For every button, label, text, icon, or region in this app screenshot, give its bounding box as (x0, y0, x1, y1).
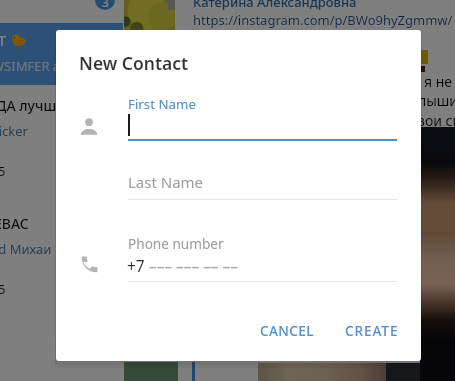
staticText: Last Name (128, 172, 204, 192)
staticText: CREATE (345, 321, 399, 340)
staticText: WSIMFER a (0, 57, 61, 75)
staticText: 5 (0, 162, 6, 180)
other: Contact name (80, 117, 98, 135)
staticText: ДА лучши (0, 96, 66, 115)
staticText: ЕВАС (0, 214, 29, 233)
staticText: вои си (417, 111, 455, 130)
staticText: Катерина Александровна (193, 0, 357, 11)
staticText: лыши (418, 91, 455, 110)
staticText: +7 (127, 256, 145, 277)
staticText: ––– ––– –– –– (145, 256, 238, 277)
staticText: New Contact (79, 51, 189, 75)
staticText: 3 (102, 0, 109, 10)
other: Phone number (77, 252, 100, 275)
staticText: T 🐤 (0, 31, 27, 50)
staticText: First Name (128, 95, 196, 113)
staticText: Phone number (128, 234, 224, 253)
button[interactable]: CANCEL (252, 314, 322, 347)
staticText: ticker (0, 122, 28, 140)
button[interactable]: CREATE (337, 314, 407, 347)
staticText: ed Михаи (0, 240, 52, 258)
staticText: я не т (424, 72, 455, 91)
staticText: CANCEL (260, 321, 314, 340)
staticText: 5 (0, 280, 6, 298)
staticText: https://instagram.com/p/BWo9hyZgmmw/ (193, 11, 453, 29)
